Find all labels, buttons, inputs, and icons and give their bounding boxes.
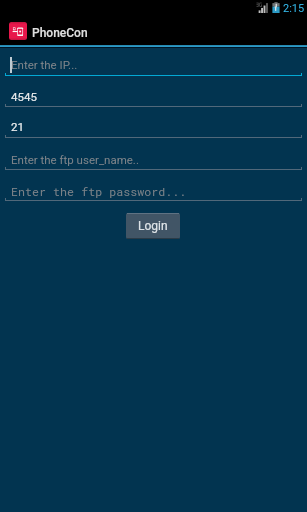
staticText: 21 bbox=[11, 120, 24, 133]
staticText: 2:15 bbox=[283, 2, 305, 15]
staticText: PhoneCon bbox=[32, 26, 88, 40]
button[interactable]: Login bbox=[126, 213, 180, 239]
staticText: Enter the ftp user_name.. bbox=[11, 153, 139, 166]
button[interactable] bbox=[4, 82, 302, 108]
staticText: Enter the IP... bbox=[11, 58, 78, 71]
other: PhoneCon app icon bbox=[9, 22, 27, 40]
button[interactable] bbox=[4, 145, 302, 171]
button[interactable] bbox=[4, 51, 302, 77]
staticText: Login bbox=[138, 219, 168, 233]
staticText: 4545 bbox=[11, 90, 37, 103]
button[interactable] bbox=[4, 176, 302, 202]
staticText: Enter the ftp password... bbox=[11, 184, 187, 199]
button[interactable]: PhoneCon app icon bbox=[0, 16, 95, 45]
other: 3G signal strength bbox=[256, 2, 268, 13]
other: Battery charging bbox=[272, 2, 280, 13]
button[interactable] bbox=[4, 113, 302, 139]
